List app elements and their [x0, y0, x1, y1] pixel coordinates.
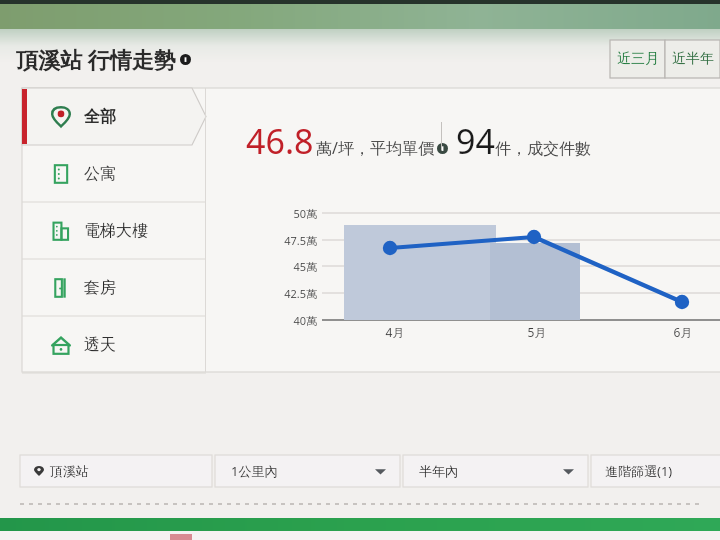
other: Expand 1公里內: [375, 466, 386, 477]
staticText: 頂溪站: [50, 463, 89, 479]
staticText: 頂溪站 行情走勢: [16, 44, 176, 74]
button[interactable]: 頂溪站 行情走勢: [16, 44, 191, 74]
staticText: 40萬: [275, 313, 317, 328]
staticText: 電梯大樓: [84, 221, 148, 241]
staticText: 4月: [380, 324, 410, 340]
staticText: 近半年: [672, 50, 714, 68]
staticText: 42.5萬: [275, 286, 317, 301]
staticText: 5月: [522, 324, 552, 340]
button[interactable]: 進階篩選(1): [591, 455, 720, 487]
staticText: 公寓: [84, 164, 116, 184]
staticText: 半年內: [419, 463, 458, 479]
staticText: 萬/坪，平均單價: [316, 137, 434, 159]
staticText: 近三月: [617, 50, 659, 68]
staticText: 全部: [84, 107, 116, 127]
button[interactable]: 套房: [22, 259, 206, 316]
button[interactable]: 透天: [22, 316, 206, 373]
staticText: 47.5萬: [275, 233, 317, 248]
button[interactable]: 頂溪站: [20, 455, 212, 487]
staticText: 套房: [84, 278, 116, 298]
button[interactable]: 公寓: [22, 145, 206, 202]
staticText: 50萬: [275, 206, 317, 221]
staticText: 94: [456, 118, 495, 164]
other: Expand 半年內: [563, 466, 574, 477]
staticText: 46.8: [246, 118, 314, 164]
button[interactable]: 近半年: [665, 40, 720, 78]
staticText: 6月: [668, 324, 698, 340]
staticText: 1公里內: [231, 462, 278, 480]
button[interactable]: 全部: [22, 88, 206, 145]
button[interactable]: 近三月: [610, 40, 665, 78]
staticText: 件，成交件數: [495, 139, 591, 159]
staticText: 進階篩選(1): [605, 462, 673, 480]
button[interactable]: 半年內: [403, 455, 588, 487]
button[interactable]: 電梯大樓: [22, 202, 206, 259]
staticText: 45萬: [275, 259, 317, 274]
button[interactable]: 1公里內: [215, 455, 400, 487]
staticText: 透天: [84, 335, 116, 355]
